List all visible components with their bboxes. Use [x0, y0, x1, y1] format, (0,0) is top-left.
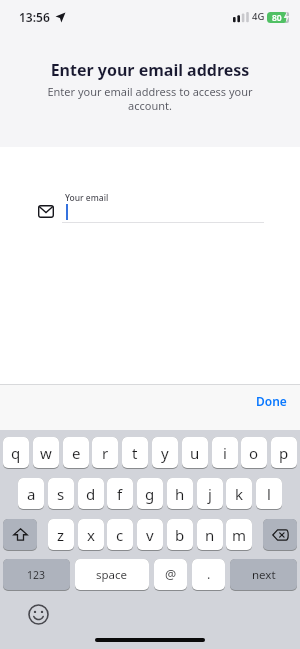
staticText: i: [223, 443, 227, 463]
button[interactable]: space: [75, 559, 149, 590]
button[interactable]: e: [63, 437, 89, 468]
button[interactable]: r: [92, 437, 118, 468]
button[interactable]: i: [212, 437, 238, 468]
staticText: k: [235, 484, 244, 504]
button[interactable]: f: [107, 478, 133, 509]
staticText: @: [165, 566, 177, 583]
button[interactable]: w: [33, 437, 59, 468]
button[interactable]: h: [167, 478, 193, 509]
button[interactable]: j: [197, 478, 223, 509]
button[interactable]: [27, 603, 49, 625]
staticText: Enter your email address to access your …: [0, 84, 300, 113]
staticText: 13:56: [19, 9, 50, 25]
staticText: e: [72, 443, 81, 463]
staticText: next: [252, 567, 276, 583]
staticText: t: [132, 443, 138, 463]
button[interactable]: c: [107, 519, 133, 550]
staticText: j: [208, 484, 212, 504]
button[interactable]: a: [18, 478, 44, 509]
staticText: p: [279, 443, 289, 463]
button[interactable]: b: [167, 519, 193, 550]
staticText: w: [40, 443, 52, 463]
staticText: 80: [272, 12, 282, 23]
button[interactable]: z: [48, 519, 74, 550]
button[interactable]: v: [137, 519, 163, 550]
staticText: x: [87, 525, 95, 545]
staticText: l: [267, 484, 271, 504]
button[interactable]: [30, 188, 270, 228]
staticText: u: [190, 443, 200, 463]
button[interactable]: t: [122, 437, 148, 468]
staticText: r: [102, 443, 109, 463]
staticText: y: [161, 443, 169, 463]
button[interactable]: 123: [3, 559, 70, 590]
staticText: z: [57, 525, 65, 545]
button[interactable]: n: [197, 519, 223, 550]
button[interactable]: k: [226, 478, 252, 509]
button[interactable]: .: [192, 559, 225, 590]
staticText: b: [175, 525, 185, 545]
staticText: space: [96, 567, 128, 583]
button[interactable]: p: [271, 437, 297, 468]
button[interactable]: @: [154, 559, 187, 590]
button[interactable]: s: [48, 478, 74, 509]
button[interactable]: g: [137, 478, 163, 509]
staticText: c: [116, 525, 124, 545]
staticText: q: [11, 443, 21, 463]
staticText: f: [117, 484, 123, 504]
staticText: v: [146, 525, 154, 545]
staticText: 4G: [252, 10, 265, 23]
button[interactable]: x: [78, 519, 104, 550]
staticText: m: [232, 525, 247, 545]
button[interactable]: Done: [246, 390, 296, 412]
staticText: h: [175, 484, 185, 504]
staticText: a: [27, 484, 36, 504]
staticText: n: [205, 525, 215, 545]
button[interactable]: d: [78, 478, 104, 509]
button[interactable]: u: [182, 437, 208, 468]
staticText: 123: [27, 568, 46, 582]
staticText: g: [145, 484, 155, 504]
button[interactable]: q: [3, 437, 29, 468]
button[interactable]: [3, 519, 37, 550]
staticText: Your email: [65, 192, 109, 204]
button[interactable]: [263, 519, 297, 550]
button[interactable]: next: [230, 559, 297, 590]
staticText: Done: [256, 393, 287, 409]
staticText: d: [86, 484, 96, 504]
button[interactable]: l: [256, 478, 282, 509]
button[interactable]: o: [241, 437, 267, 468]
button[interactable]: y: [152, 437, 178, 468]
staticText: .: [207, 566, 211, 583]
button[interactable]: m: [226, 519, 252, 550]
staticText: Enter your email address: [0, 59, 300, 81]
staticText: o: [249, 443, 259, 463]
staticText: s: [57, 484, 65, 504]
